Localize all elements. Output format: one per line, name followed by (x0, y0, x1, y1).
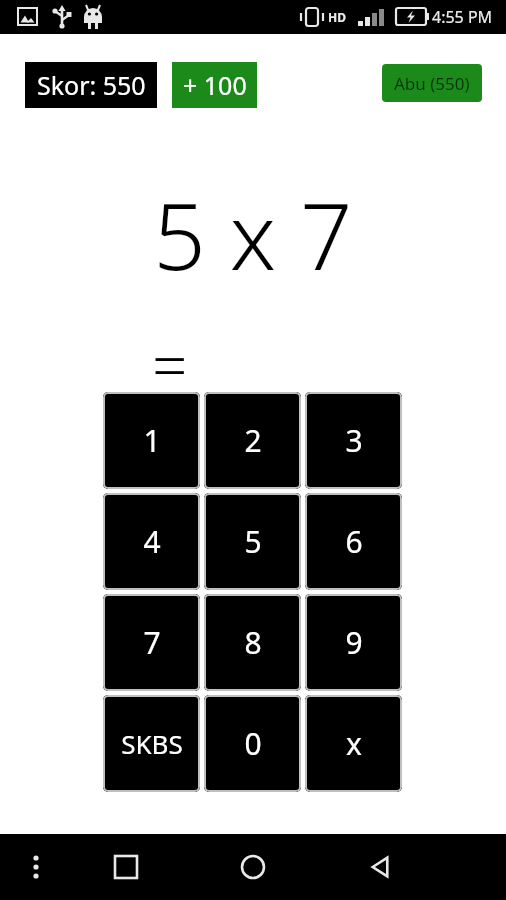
staticText: SKBS (121, 726, 183, 761)
staticText: 7 (143, 622, 161, 663)
staticText: 5 (244, 521, 262, 562)
button[interactable]: Abu (550) (382, 64, 482, 102)
staticText: 4 (143, 521, 161, 562)
button[interactable]: 9 (305, 594, 402, 691)
staticText: 1 (143, 420, 161, 461)
button[interactable]: 6 (305, 493, 402, 590)
button[interactable]: SKBS (103, 695, 200, 792)
staticText: Abu (550) (394, 72, 470, 95)
button[interactable]: 0 (204, 695, 301, 792)
button[interactable]: 8 (204, 594, 301, 691)
staticText: + 100 (183, 68, 247, 102)
button[interactable]: Recent apps (104, 845, 148, 889)
button[interactable]: 2 (204, 392, 301, 489)
staticText: 2 (244, 420, 262, 461)
button[interactable]: 4 (103, 493, 200, 590)
staticText: = (152, 322, 188, 406)
staticText: x (346, 723, 362, 764)
button[interactable]: Back (358, 845, 402, 889)
button[interactable]: Home (231, 845, 275, 889)
button[interactable]: 7 (103, 594, 200, 691)
staticText: 3 (345, 420, 363, 461)
staticText: 9 (345, 622, 363, 663)
staticText: Skor: 550 (37, 68, 146, 102)
button[interactable]: 3 (305, 392, 402, 489)
button[interactable]: Skor: 550 (25, 62, 157, 108)
button[interactable]: 1 (103, 392, 200, 489)
button[interactable]: More options (14, 845, 58, 889)
button[interactable]: + 100 (172, 62, 257, 108)
staticText: HD (328, 9, 346, 25)
button[interactable]: 5 (204, 493, 301, 590)
button[interactable]: x (305, 695, 402, 792)
staticText: 8 (244, 622, 262, 663)
staticText: 6 (345, 521, 363, 562)
staticText: 4:55 PM (432, 6, 493, 28)
staticText: 5 x 7 (153, 172, 353, 297)
staticText: 0 (244, 723, 262, 764)
